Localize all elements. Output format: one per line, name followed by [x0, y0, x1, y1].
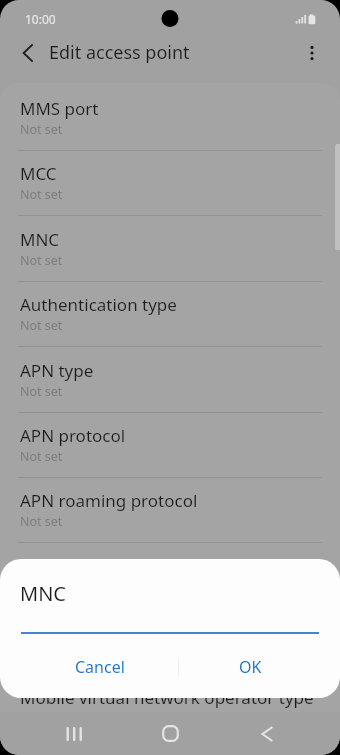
button[interactable]: APN enable/disable — [0, 542, 340, 607]
staticText: Edit access point — [49, 40, 190, 65]
staticText: OK — [239, 656, 262, 678]
button[interactable]: OK — [180, 648, 320, 686]
staticText: Not set — [20, 579, 63, 596]
staticText: MCC — [20, 162, 57, 185]
button[interactable]: Back — [244, 712, 290, 755]
staticText: Not set — [20, 121, 63, 138]
button[interactable]: APN type — [0, 346, 340, 411]
staticText: APN type — [20, 359, 94, 382]
button[interactable]: More options — [289, 30, 335, 75]
staticText: MMS port — [20, 97, 99, 120]
button[interactable]: MNC — [0, 215, 340, 280]
button[interactable]: Mobile virtual network operator type — [0, 673, 340, 712]
button[interactable]: Recents — [51, 712, 97, 755]
staticText: Bearer — [20, 620, 74, 643]
button[interactable]: Authentication type — [0, 280, 340, 345]
staticText: 10:00 — [25, 11, 56, 27]
button[interactable]: APN protocol — [0, 411, 340, 476]
staticText: Not set — [20, 448, 63, 465]
button[interactable]: Home — [147, 712, 193, 755]
button[interactable]: Cancel — [30, 648, 170, 686]
staticText: Not set — [20, 186, 63, 203]
staticText: Mobile virtual network operator type — [20, 686, 314, 709]
staticText: APN enable/disable — [20, 555, 176, 578]
staticText: Not set — [20, 317, 63, 334]
staticText: APN roaming protocol — [20, 489, 198, 512]
staticText: MNC — [20, 228, 60, 251]
staticText: Not set — [20, 252, 63, 269]
staticText: Cancel — [75, 656, 125, 678]
staticText: APN protocol — [20, 424, 126, 447]
staticText: Not set — [20, 383, 63, 400]
button[interactable]: MCC — [0, 149, 340, 214]
staticText: MNC — [20, 580, 66, 607]
button[interactable]: APN roaming protocol — [0, 476, 340, 541]
staticText: Not set — [20, 513, 63, 530]
staticText: Authentication type — [20, 293, 177, 316]
button[interactable]: Navigate up — [5, 30, 51, 75]
button[interactable]: Bearer — [0, 607, 340, 672]
button[interactable]: MMS port — [0, 84, 340, 149]
